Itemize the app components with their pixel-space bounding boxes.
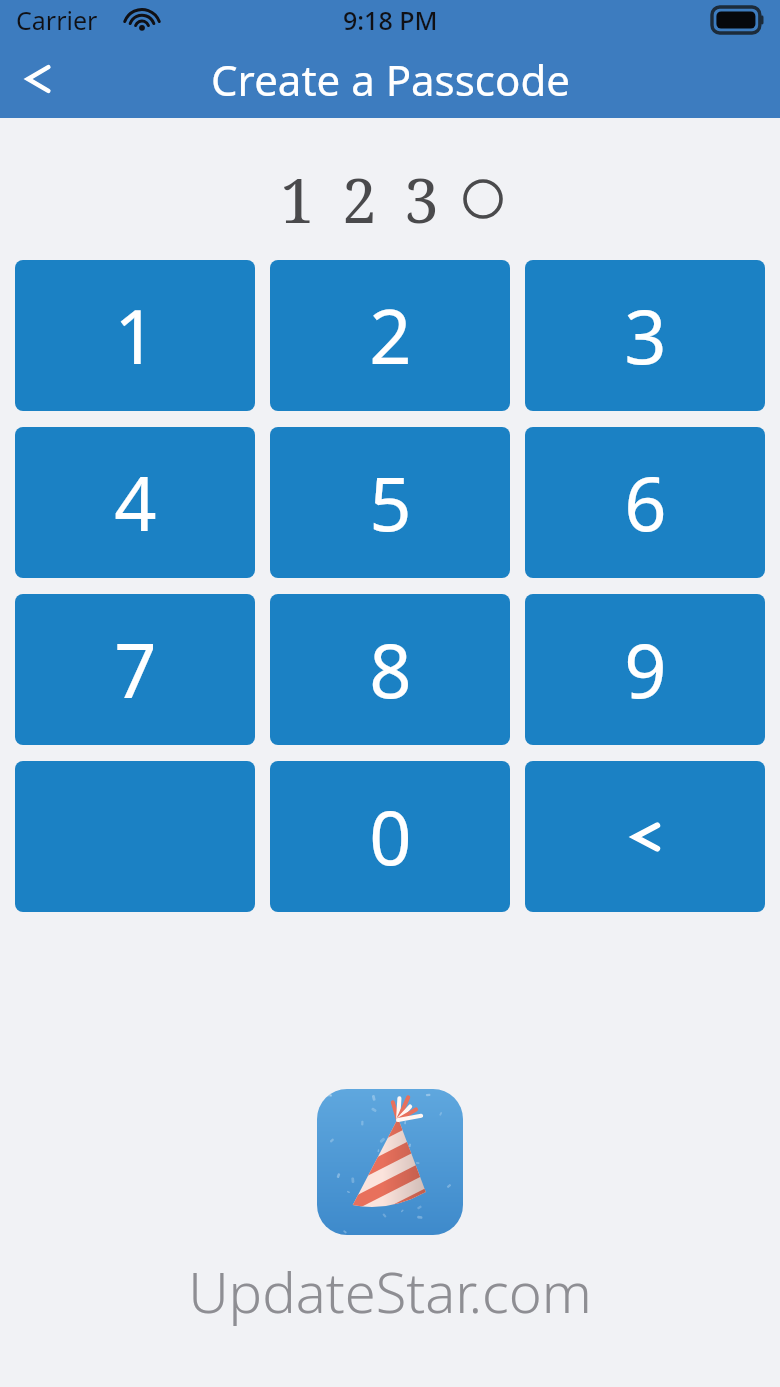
staticText: 5: [369, 452, 412, 553]
button[interactable]: 4: [15, 427, 255, 578]
staticText: 0: [369, 786, 412, 887]
button[interactable]: 2: [270, 260, 510, 411]
staticText: UpdateStar.com: [188, 1253, 592, 1329]
button[interactable]: 0: [270, 761, 510, 912]
button[interactable]: Back: [0, 40, 72, 118]
staticText: 6: [624, 452, 667, 553]
staticText: 9: [624, 619, 667, 720]
staticText: Carrier: [16, 3, 98, 37]
button[interactable]: 7: [15, 594, 255, 745]
button[interactable]: 3: [525, 260, 765, 411]
button[interactable]: 9: [525, 594, 765, 745]
staticText: 7: [114, 619, 157, 720]
staticText: Create a Passcode: [211, 51, 570, 108]
staticText: 9:18 PM: [343, 3, 438, 37]
staticText: 2: [342, 157, 377, 241]
staticText: 2: [369, 285, 412, 386]
staticText: 8: [369, 619, 412, 720]
button[interactable]: 1: [15, 260, 255, 411]
staticText: 3: [624, 285, 667, 386]
staticText: 1: [280, 157, 315, 241]
button[interactable]: UpdateStar app icon: [317, 1089, 463, 1235]
button[interactable]: 8: [270, 594, 510, 745]
button[interactable]: Delete: [525, 761, 765, 912]
staticText: 3: [404, 157, 439, 241]
staticText: 1: [114, 285, 157, 386]
staticText: 4: [114, 452, 157, 553]
button[interactable]: 6: [525, 427, 765, 578]
button[interactable]: 5: [270, 427, 510, 578]
